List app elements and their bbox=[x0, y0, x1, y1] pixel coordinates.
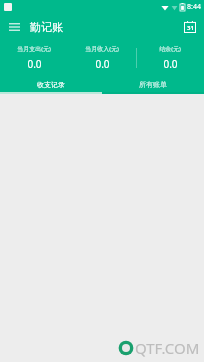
staticText: 0.0 bbox=[95, 57, 110, 71]
button[interactable]: Calendar bbox=[181, 18, 199, 36]
staticText: 所有账单 bbox=[139, 80, 167, 89]
button[interactable]: 所有账单 bbox=[102, 76, 204, 92]
staticText: 收支记录 bbox=[37, 80, 65, 89]
button[interactable]: Menu bbox=[5, 18, 23, 36]
staticText: 0.0 bbox=[27, 57, 42, 71]
staticText: QTF.COM bbox=[135, 338, 200, 358]
button[interactable]: 当月支出(元) bbox=[0, 40, 68, 76]
staticText: 当月支出(元) bbox=[17, 45, 51, 53]
button[interactable]: 结余(元) bbox=[136, 40, 204, 76]
staticText: 0.0 bbox=[163, 57, 178, 71]
staticText: 8:44 bbox=[187, 2, 201, 12]
staticText: 当月收入(元) bbox=[85, 45, 119, 53]
button[interactable]: 当月收入(元) bbox=[68, 40, 136, 76]
staticText: 勤记账 bbox=[30, 20, 63, 34]
staticText: 结余(元) bbox=[159, 45, 181, 53]
staticText: 31 bbox=[187, 24, 194, 32]
button[interactable]: 收支记录 bbox=[0, 76, 102, 92]
